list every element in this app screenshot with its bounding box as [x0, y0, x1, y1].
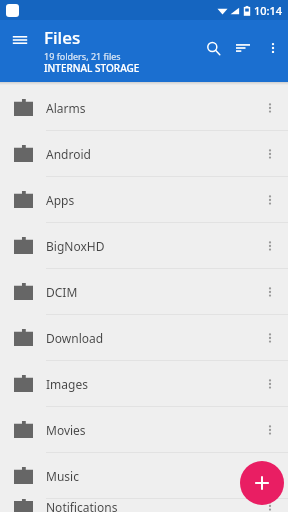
staticText: Android [46, 146, 252, 162]
button[interactable]: Open navigation drawer [6, 26, 34, 54]
button[interactable]: More options for Movies [252, 407, 288, 452]
staticText: BigNoxHD [46, 238, 252, 254]
staticText: Files [44, 26, 81, 49]
button[interactable]: Movies [0, 407, 288, 453]
staticText: Movies [46, 422, 252, 438]
button[interactable]: More options for DCIM [252, 269, 288, 314]
staticText: Apps [46, 192, 252, 208]
staticText: Music [46, 468, 252, 484]
staticText: 10:14 [254, 3, 283, 18]
button[interactable]: Sort [229, 34, 257, 62]
button[interactable]: More options for Images [252, 361, 288, 406]
staticText: Alarms [46, 100, 252, 116]
button[interactable]: Images [0, 361, 288, 407]
button[interactable]: Search [199, 34, 227, 62]
button[interactable]: BigNoxHD [0, 223, 288, 269]
staticText: Images [46, 376, 252, 392]
button[interactable]: More options for Notifications [252, 499, 288, 512]
button[interactable]: More options for Apps [252, 177, 288, 222]
button[interactable]: Download [0, 315, 288, 361]
button[interactable]: Alarms [0, 85, 288, 131]
staticText: Notifications [46, 499, 252, 512]
button[interactable]: Apps [0, 177, 288, 223]
staticText: Download [46, 330, 252, 346]
button[interactable]: Music [0, 453, 288, 499]
staticText: INTERNAL STORAGE [44, 61, 140, 75]
button[interactable]: Android [0, 131, 288, 177]
button[interactable]: More options for BigNoxHD [252, 223, 288, 268]
button[interactable]: DCIM [0, 269, 288, 315]
staticText: DCIM [46, 284, 252, 300]
button[interactable]: More options for Music [252, 453, 288, 498]
button[interactable]: Add [240, 461, 284, 505]
button[interactable]: More options for Download [252, 315, 288, 360]
button[interactable]: Notifications [0, 499, 288, 512]
button[interactable]: More options for Android [252, 131, 288, 176]
button[interactable]: More options for Alarms [252, 85, 288, 130]
staticText: 19 folders, 21 files [44, 50, 121, 62]
button[interactable]: More options [259, 34, 287, 62]
